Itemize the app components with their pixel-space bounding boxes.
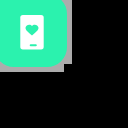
button[interactable]: Open health app xyxy=(0,0,67,67)
